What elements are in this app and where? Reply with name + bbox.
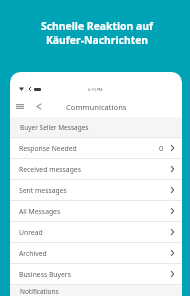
button[interactable]: Business Buyers bbox=[10, 264, 182, 284]
staticText: 0 bbox=[159, 143, 164, 153]
button[interactable]: Sent messages bbox=[10, 180, 182, 200]
staticText: Sent messages bbox=[19, 186, 67, 195]
staticText: 6:10 PM bbox=[88, 87, 103, 92]
button[interactable]: Received messages bbox=[10, 159, 182, 179]
button[interactable]: Unread bbox=[10, 222, 182, 242]
button[interactable]: Response Needed bbox=[10, 138, 182, 158]
staticText: Received messages bbox=[19, 165, 81, 174]
staticText: Buyer Seller Messages bbox=[20, 123, 89, 132]
staticText: Response Needed bbox=[19, 144, 77, 153]
button[interactable]: Menu bbox=[12, 96, 28, 117]
staticText: Business Buyers bbox=[19, 270, 71, 279]
staticText: Schnelle Reaktion auf Käufer-Nachrichten bbox=[2, 19, 190, 47]
button[interactable]: Archived bbox=[10, 243, 182, 263]
staticText: Unread bbox=[19, 228, 43, 237]
staticText: Communications bbox=[66, 102, 127, 112]
button[interactable]: All Messages bbox=[10, 201, 182, 221]
staticText: Notifications bbox=[20, 287, 59, 296]
staticText: All Messages bbox=[19, 207, 61, 216]
staticText: Archived bbox=[19, 249, 47, 258]
button[interactable]: Back bbox=[32, 96, 46, 117]
